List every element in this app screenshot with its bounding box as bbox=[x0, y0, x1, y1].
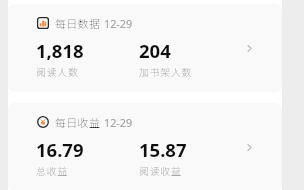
staticText: 204 bbox=[139, 38, 171, 63]
button[interactable]: Daily earnings bbox=[8, 103, 282, 190]
staticText: 阅读收益 bbox=[139, 164, 182, 178]
staticText: 12-29 bbox=[104, 16, 133, 31]
staticText: 12-29 bbox=[104, 115, 133, 130]
other: Open details bbox=[247, 44, 252, 53]
staticText: 15.87 bbox=[139, 137, 187, 162]
other: Daily statistics bbox=[37, 17, 49, 29]
staticText: 阅读人数 bbox=[36, 65, 79, 79]
button[interactable]: Daily statistics bbox=[8, 4, 282, 92]
other: Daily earnings bbox=[37, 116, 49, 128]
staticText: 16.79 bbox=[36, 137, 84, 162]
staticText: 加书架人数 bbox=[139, 65, 193, 79]
staticText: 每日数据 bbox=[55, 15, 101, 31]
staticText: 每日收益 bbox=[55, 114, 101, 130]
other: Open details bbox=[247, 143, 252, 152]
staticText: 1,818 bbox=[36, 38, 84, 63]
staticText: 总收益 bbox=[36, 164, 68, 178]
